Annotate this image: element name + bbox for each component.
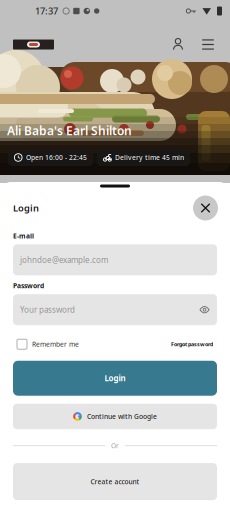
button[interactable]: Remember me: [13, 337, 79, 351]
staticText: E-mail: [13, 231, 34, 240]
button[interactable]: Forgot password: [171, 337, 217, 351]
staticText: Open 16:00 - 22:45: [26, 153, 87, 162]
staticText: 17:37: [35, 5, 58, 17]
staticText: johndoe@example.com: [20, 254, 108, 265]
staticText: Your password: [20, 304, 75, 315]
button[interactable]: Continue with Google: [13, 404, 217, 429]
staticText: Delivery time 45 min: [115, 153, 184, 162]
staticText: Password: [13, 281, 44, 290]
staticText: Continue with Google: [87, 412, 157, 421]
button[interactable]: Account: [166, 32, 190, 56]
button[interactable]: Login: [13, 361, 217, 396]
staticText: Forgot password: [171, 341, 213, 348]
staticText: Ali Baba's Earl Shilton: [7, 122, 132, 138]
staticText: Remember me: [32, 340, 79, 349]
staticText: Login: [104, 373, 125, 383]
staticText: Create account: [90, 477, 139, 486]
button[interactable]: Menu: [196, 32, 220, 56]
button[interactable]: Show password: [198, 303, 211, 316]
button[interactable]: Close: [193, 195, 218, 220]
button[interactable]: Create account: [13, 463, 217, 500]
staticText: Login: [13, 202, 39, 214]
staticText: Or: [111, 441, 119, 450]
